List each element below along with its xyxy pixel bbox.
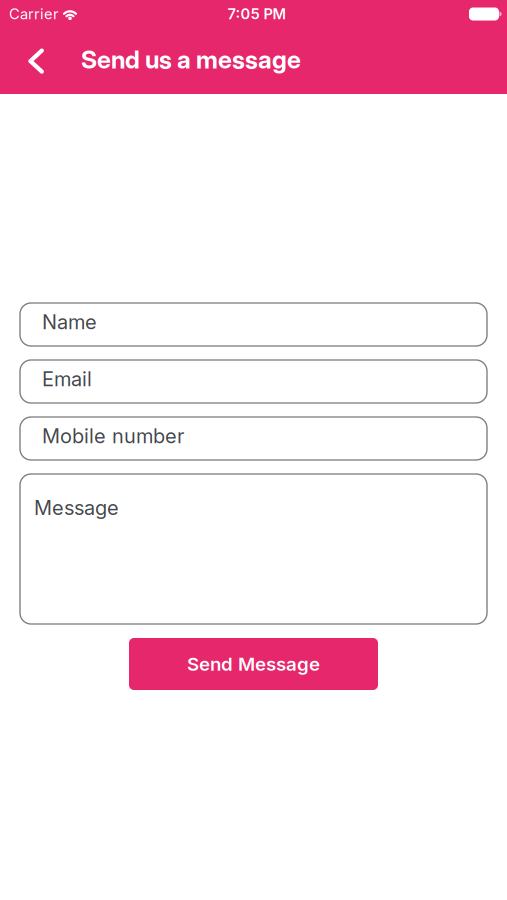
staticText: Send Message bbox=[187, 653, 320, 675]
staticText: Name bbox=[42, 310, 97, 334]
button[interactable]: Back bbox=[0, 48, 55, 74]
button[interactable]: Send Message bbox=[129, 638, 378, 690]
staticText: Mobile number bbox=[42, 424, 184, 448]
staticText: 7:05 PM bbox=[227, 5, 286, 23]
staticText: Send us a message bbox=[81, 45, 301, 74]
button[interactable]: Name bbox=[20, 303, 487, 346]
staticText: Carrier bbox=[9, 5, 59, 23]
staticText: Message bbox=[34, 496, 119, 520]
button[interactable]: Mobile number bbox=[20, 417, 487, 460]
button[interactable]: Email bbox=[20, 360, 487, 403]
staticText: Email bbox=[42, 367, 92, 391]
button[interactable]: Message bbox=[20, 474, 487, 624]
